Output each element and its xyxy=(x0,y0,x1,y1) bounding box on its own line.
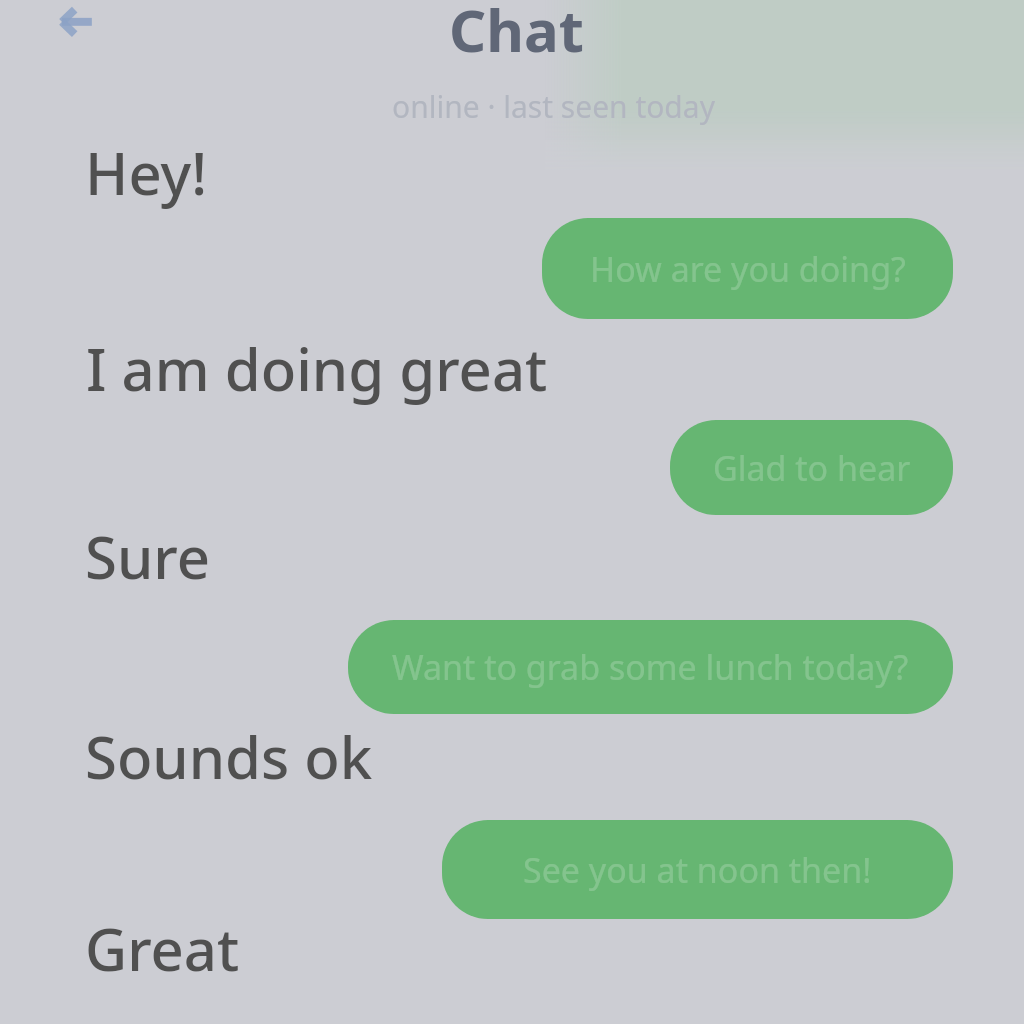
staticText: Great xyxy=(85,909,240,988)
button[interactable]: I am doing great xyxy=(86,329,548,408)
staticText: Want to grab some lunch today? xyxy=(392,644,909,690)
button[interactable]: Glad to hear xyxy=(670,420,953,515)
staticText: Sounds ok xyxy=(85,717,373,796)
staticText: online · last seen today xyxy=(392,86,715,127)
button[interactable]: Chat xyxy=(449,0,584,69)
staticText: How are you doing? xyxy=(590,246,906,292)
staticText: Chat xyxy=(449,0,584,69)
staticText: Glad to hear xyxy=(713,445,911,491)
button[interactable]: Great xyxy=(85,909,240,988)
button[interactable]: How are you doing? xyxy=(542,218,953,319)
staticText: Sure xyxy=(85,517,210,596)
button[interactable]: Hey! xyxy=(85,133,207,212)
button[interactable]: See you at noon then! xyxy=(442,820,953,919)
staticText: I am doing great xyxy=(86,329,548,408)
button[interactable]: online · last seen today xyxy=(392,86,715,127)
button[interactable]: Sounds ok xyxy=(85,717,373,796)
button[interactable]: Want to grab some lunch today? xyxy=(348,620,953,714)
staticText: Hey! xyxy=(85,133,207,212)
staticText: See you at noon then! xyxy=(523,847,872,893)
button[interactable]: Sure xyxy=(85,517,210,596)
button[interactable]: Back xyxy=(54,0,98,42)
